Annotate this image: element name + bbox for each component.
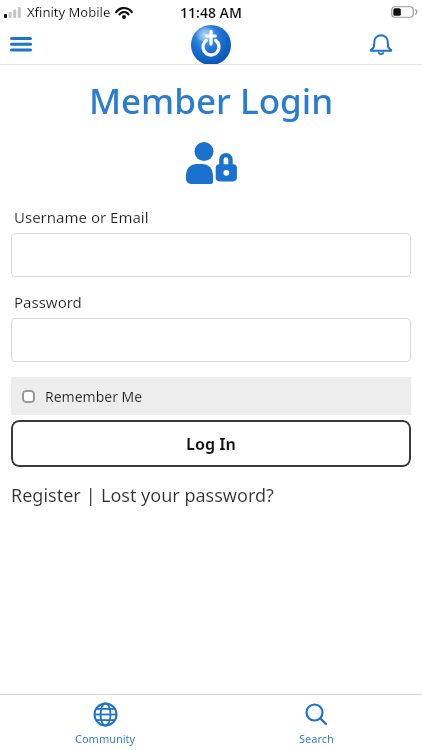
button[interactable]: Log In	[11, 420, 411, 467]
staticText: |	[81, 483, 101, 508]
staticText: Log In	[186, 433, 236, 455]
staticText: 11:48 AM	[180, 3, 242, 22]
button[interactable]: Lost your password?	[101, 483, 274, 508]
button[interactable]	[11, 318, 411, 362]
button[interactable]: Remember Me	[11, 377, 411, 415]
button[interactable]	[8, 33, 34, 55]
staticText: Member Login	[0, 77, 422, 125]
staticText: Remember Me	[45, 387, 143, 406]
button[interactable]	[368, 31, 394, 57]
staticText: Xfinity Mobile	[27, 3, 111, 21]
button[interactable]	[11, 233, 411, 277]
staticText: Password	[14, 292, 82, 312]
button[interactable]	[190, 24, 232, 64]
staticText: Community	[75, 731, 136, 746]
staticText: Username or Email	[14, 207, 149, 227]
button[interactable]: Register	[11, 483, 81, 508]
button[interactable]: Search	[211, 695, 422, 750]
staticText: Search	[299, 731, 334, 746]
button[interactable]: Community	[0, 695, 211, 750]
